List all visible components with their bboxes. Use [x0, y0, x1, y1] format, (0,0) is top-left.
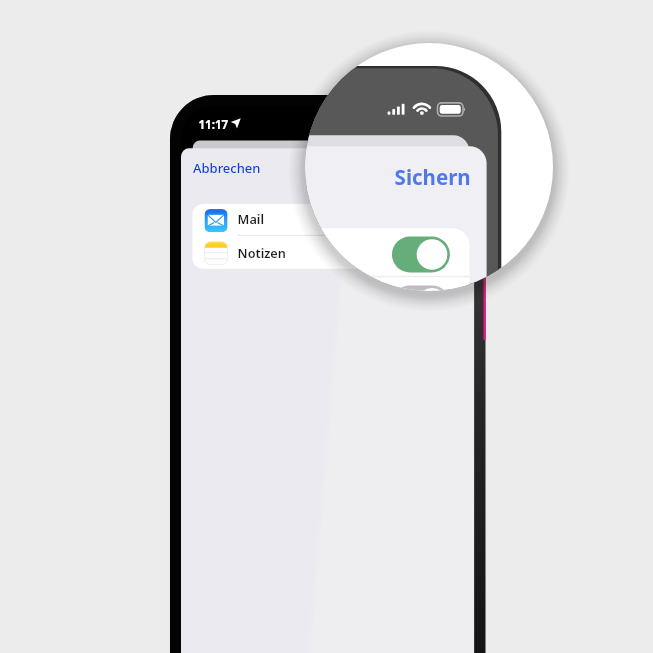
button[interactable]: Notizen [192, 237, 463, 269]
button[interactable]: Mail [192, 204, 463, 237]
button[interactable]: Lupe [305, 43, 553, 291]
button[interactable]: Sichern [416, 158, 464, 186]
button[interactable]: Mail aktivieren [403, 208, 443, 233]
button[interactable]: Notizen aktivieren [403, 241, 443, 266]
button[interactable]: Abbrechen [193, 158, 263, 186]
